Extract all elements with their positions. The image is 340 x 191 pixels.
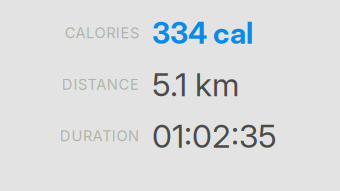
staticText: 5.1 km (152, 65, 239, 104)
staticText: CALORIES (65, 24, 139, 42)
staticText: 334 cal (152, 15, 253, 51)
staticText: DISTANCE (62, 76, 139, 93)
staticText: DURATION (60, 127, 139, 145)
staticText: 01:02:35 (152, 117, 277, 155)
